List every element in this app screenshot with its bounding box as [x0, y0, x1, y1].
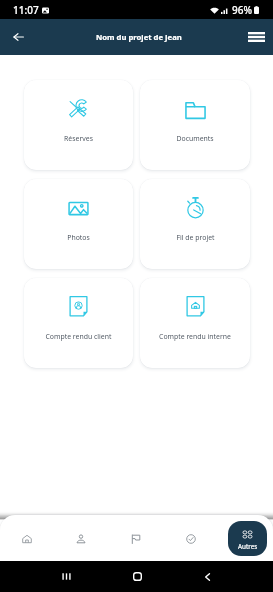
button[interactable]: Réserves	[24, 80, 133, 170]
staticText: Autres	[238, 542, 258, 551]
button[interactable]: Retour	[4, 23, 32, 51]
button[interactable]: Autres	[228, 521, 267, 556]
staticText: 96%	[232, 3, 252, 17]
button[interactable]: Documents	[140, 80, 250, 170]
button[interactable]: Réserves	[108, 515, 163, 561]
button[interactable]: Menu	[242, 23, 270, 51]
button[interactable]: Photos	[24, 179, 133, 269]
button[interactable]: Accueil	[0, 515, 54, 561]
button[interactable]: Profil	[54, 515, 108, 561]
staticText: Photos	[67, 233, 90, 242]
staticText: Documents	[176, 134, 214, 143]
staticText: Nom du projet de Jean	[96, 32, 182, 42]
button[interactable]: Fil de projet	[140, 179, 250, 269]
staticText: 11:07	[13, 3, 39, 17]
staticText: Réserves	[64, 134, 93, 143]
button[interactable]: Compte rendu client	[24, 278, 133, 368]
button[interactable]: Compte rendu interne	[140, 278, 250, 368]
button[interactable]: Tâches	[163, 515, 218, 561]
staticText: Compte rendu interne	[159, 332, 231, 341]
staticText: Compte rendu client	[45, 332, 112, 341]
staticText: Fil de projet	[176, 233, 215, 242]
